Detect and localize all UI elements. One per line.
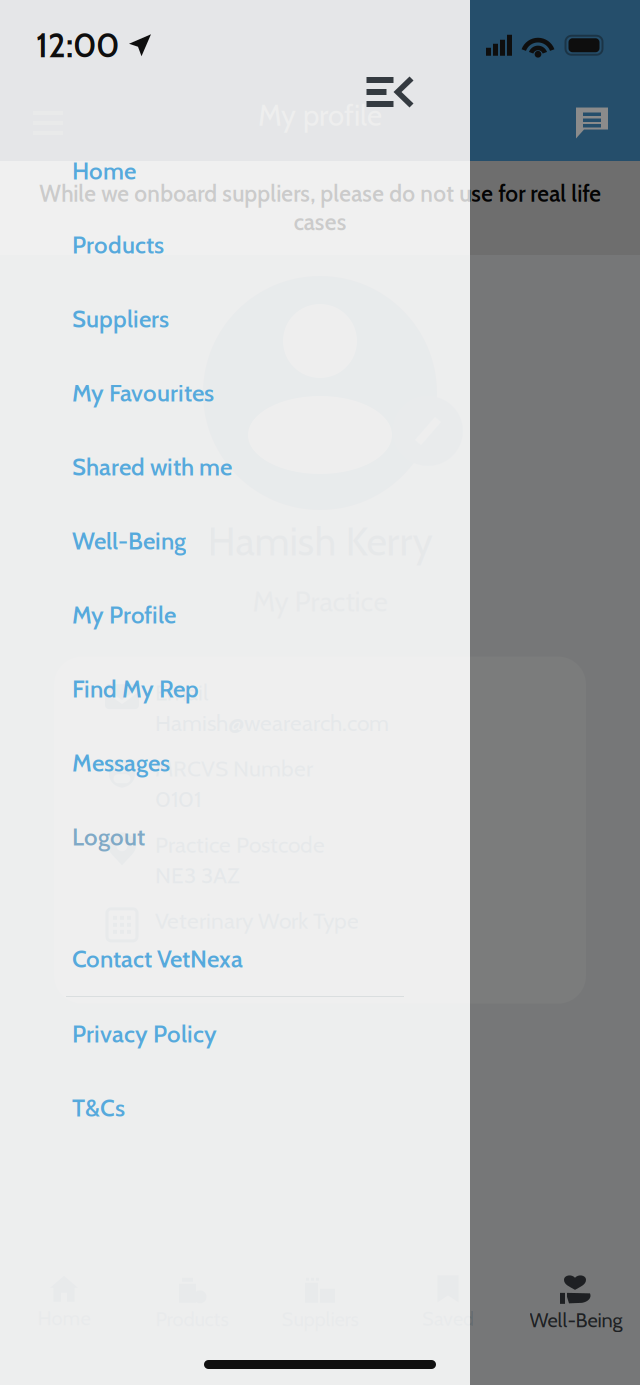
button[interactable]: Saved: [384, 1269, 512, 1337]
staticText: 0101: [155, 785, 201, 813]
button[interactable]: Find My Rep: [0, 652, 470, 726]
staticText: My Profile: [72, 600, 176, 630]
button[interactable]: Shared with me: [0, 430, 470, 504]
staticText: T&Cs: [72, 1093, 125, 1123]
button[interactable]: Suppliers: [0, 282, 470, 356]
button[interactable]: Close menu: [357, 76, 423, 108]
button[interactable]: Messages: [570, 101, 614, 145]
button[interactable]: Products: [0, 208, 470, 282]
staticText: Hamish@wearearch.com: [155, 709, 389, 737]
staticText: Home: [72, 156, 136, 186]
staticText: Practice Postcode: [155, 831, 325, 858]
staticText: My Favourites: [72, 378, 214, 408]
button[interactable]: Privacy Policy: [0, 997, 470, 1071]
button[interactable]: Well-Being: [512, 1269, 640, 1337]
staticText: Logout: [72, 822, 145, 852]
staticText: Contact VetNexa: [72, 944, 243, 974]
staticText: Well-Being: [72, 526, 186, 556]
button[interactable]: Logout: [0, 800, 470, 874]
staticText: My profile: [258, 97, 382, 133]
button[interactable]: My Profile: [0, 578, 470, 652]
staticText: Saved: [422, 1306, 474, 1331]
staticText: Privacy Policy: [72, 1019, 217, 1049]
staticText: While we onboard suppliers, please do no…: [39, 180, 601, 236]
staticText: Products: [72, 230, 164, 260]
staticText: MRCVS Number: [155, 755, 313, 782]
staticText: NE3 3AZ: [155, 861, 239, 889]
button[interactable]: Messages: [0, 726, 470, 800]
button[interactable]: My Favourites: [0, 356, 470, 430]
staticText: Well-Being: [529, 1308, 622, 1332]
staticText: 12:00: [36, 25, 119, 65]
staticText: Shared with me: [72, 452, 232, 482]
button[interactable]: Home: [0, 134, 470, 208]
staticText: Find My Rep: [72, 674, 199, 704]
button[interactable]: T&Cs: [0, 1071, 470, 1145]
staticText: Suppliers: [72, 304, 169, 334]
staticText: Messages: [72, 748, 170, 778]
staticText: Email: [155, 679, 208, 706]
button[interactable]: Well-Being: [0, 504, 470, 578]
button[interactable]: Contact VetNexa: [0, 922, 470, 996]
staticText: Veterinary Work Type: [155, 907, 359, 934]
